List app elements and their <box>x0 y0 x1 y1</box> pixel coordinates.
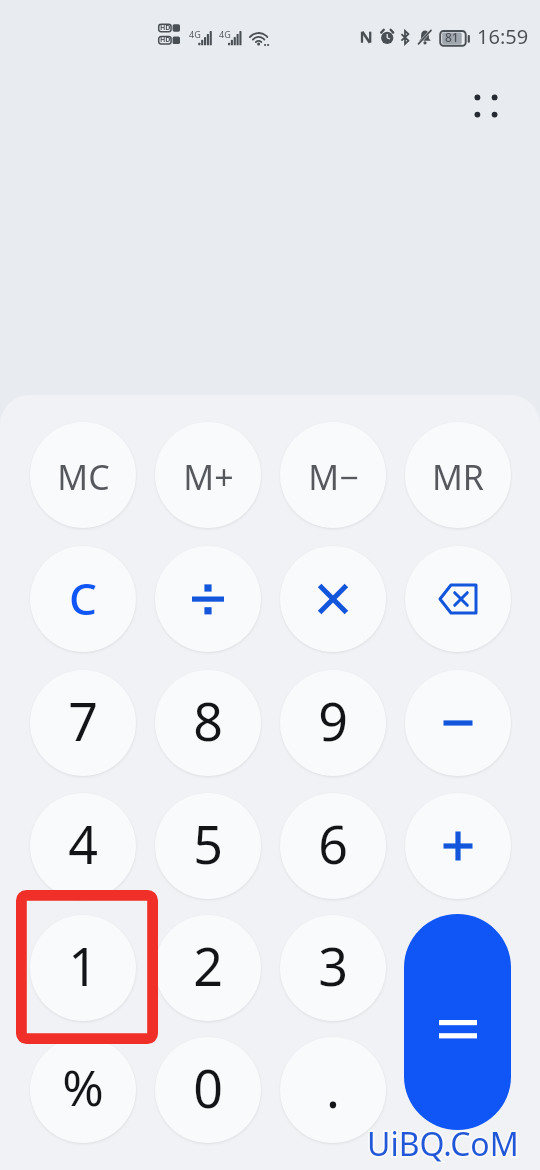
staticText: . <box>326 1052 340 1123</box>
staticText: 1 <box>68 930 98 1001</box>
staticText: M+ <box>183 454 234 500</box>
staticText: MR <box>432 454 484 500</box>
button[interactable]: 8 <box>155 670 261 776</box>
button[interactable]: % <box>30 1037 136 1143</box>
staticText: M− <box>308 454 359 500</box>
button[interactable]: 9 <box>280 670 386 776</box>
staticText: 4 <box>68 808 98 879</box>
staticText: HD <box>160 23 171 33</box>
staticText: 7 <box>68 685 98 756</box>
staticText: 3 <box>318 930 348 1001</box>
button[interactable]: M− <box>280 422 386 528</box>
staticText: 16:59 <box>477 23 529 50</box>
staticText: UiBQ.CoM <box>367 1122 519 1166</box>
staticText: 4G <box>189 28 201 40</box>
staticText: 4G <box>219 28 231 40</box>
button[interactable]: More options <box>458 78 514 134</box>
button[interactable]: Subtract <box>405 670 511 776</box>
button[interactable]: Divide <box>155 546 261 652</box>
button[interactable]: 3 <box>280 915 386 1021</box>
button[interactable]: C <box>30 546 136 652</box>
button[interactable]: 2 <box>155 915 261 1021</box>
staticText: 5 <box>193 808 223 879</box>
button[interactable]: 7 <box>30 670 136 776</box>
button[interactable]: 5 <box>155 793 261 899</box>
button[interactable]: MR <box>405 422 511 528</box>
staticText: 9 <box>318 685 348 756</box>
button[interactable]: Add <box>405 793 511 899</box>
button[interactable]: M+ <box>155 422 261 528</box>
button[interactable]: Equals <box>404 914 511 1130</box>
staticText: UiBQ.CoM <box>367 1122 519 1166</box>
staticText: 8 <box>193 685 223 756</box>
staticText: 81 <box>445 29 459 45</box>
staticText: 2 <box>193 930 223 1001</box>
button[interactable]: 1 <box>30 915 136 1021</box>
staticText: % <box>62 1053 104 1121</box>
button[interactable]: MC <box>30 422 136 528</box>
staticText: C <box>69 568 97 628</box>
staticText: 6 <box>318 808 348 879</box>
button[interactable]: 4 <box>30 793 136 899</box>
button[interactable]: Multiply <box>280 546 386 652</box>
button[interactable]: 6 <box>280 793 386 899</box>
button[interactable]: Backspace <box>405 546 511 652</box>
staticText: HD <box>160 35 171 45</box>
staticText: 0 <box>193 1052 223 1123</box>
button[interactable]: . <box>280 1037 386 1143</box>
button[interactable]: 0 <box>155 1037 261 1143</box>
staticText: MC <box>57 454 110 500</box>
